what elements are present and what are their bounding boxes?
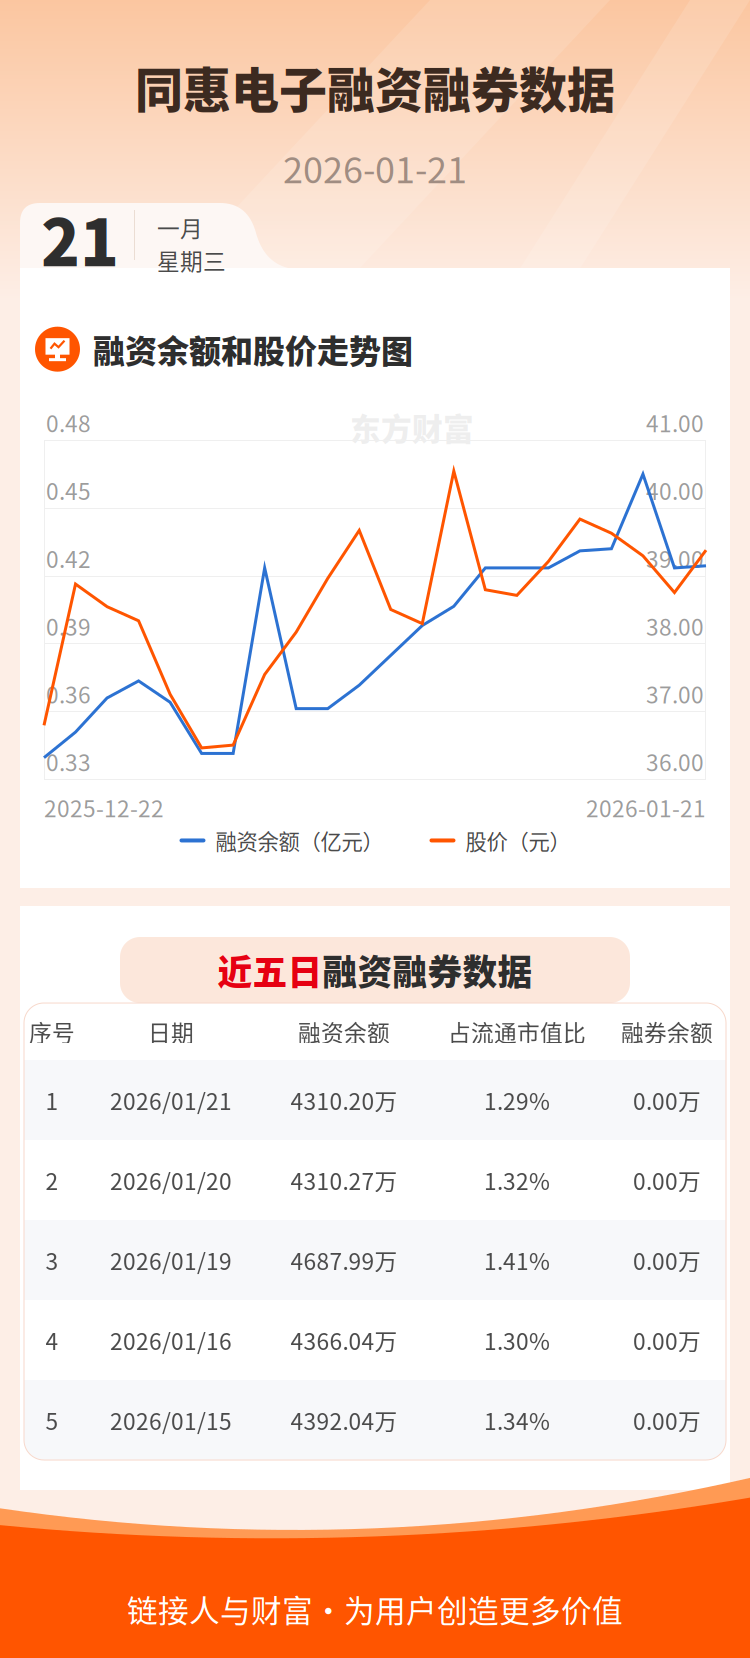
staticText: 4687.99万 (290, 1244, 397, 1276)
staticText: 融资余额（亿元） (215, 825, 383, 856)
staticText: 2026/01/21 (110, 1084, 232, 1116)
staticText: 21 (41, 192, 119, 285)
staticText: 1.29% (484, 1084, 550, 1116)
staticText: 2026/01/15 (110, 1404, 232, 1436)
staticText: 37.00 (646, 677, 704, 710)
staticText: 东方财富 (320, 1244, 444, 1288)
staticText: 4392.04万 (290, 1404, 397, 1436)
staticText: 1.32% (484, 1164, 550, 1196)
staticText: 0.00万 (633, 1244, 701, 1276)
staticText: 0.00万 (633, 1324, 701, 1356)
staticText: 39.00 (646, 542, 704, 574)
staticText: 0.33 (46, 745, 91, 778)
staticText: 4366.04万 (290, 1324, 397, 1356)
staticText: 38.00 (646, 609, 704, 642)
staticText: 36.00 (646, 745, 704, 778)
staticText: 0.00万 (633, 1164, 701, 1196)
staticText: 股价（元） (465, 825, 570, 856)
staticText: 41.00 (646, 406, 704, 439)
staticText: 2026/01/19 (110, 1244, 232, 1276)
staticText: 2026-01-21 (586, 791, 706, 824)
staticText: 链接人与财富·为用户创造更多价值 (127, 1587, 623, 1631)
staticText: 0.48 (46, 406, 91, 439)
staticText: 同惠电子融资融券数据 (135, 52, 615, 121)
staticText: 0.00万 (633, 1404, 701, 1436)
staticText: 0.42 (46, 542, 91, 574)
staticText: 占流通市值比 (448, 1015, 586, 1048)
staticText: 1.41% (484, 1244, 550, 1276)
staticText: 星期三 (157, 244, 226, 277)
staticText: 融资余额 (298, 1015, 390, 1048)
staticText: 融资余额和股价走势图 (93, 326, 413, 372)
staticText: 3 (45, 1244, 58, 1276)
staticText: 1.34% (484, 1404, 550, 1436)
staticText: 2026/01/20 (110, 1164, 232, 1196)
staticText: 序号 (29, 1015, 75, 1048)
staticText: 0.00万 (633, 1084, 701, 1116)
staticText: 4310.27万 (290, 1164, 397, 1196)
staticText: 2 (45, 1164, 58, 1196)
staticText: 2026/01/16 (110, 1324, 232, 1356)
staticText: 近五日 (217, 945, 322, 995)
staticText: 日期 (148, 1015, 194, 1048)
staticText: 2026-01-21 (283, 141, 467, 194)
staticText: 4310.20万 (290, 1084, 397, 1116)
staticText: 5 (45, 1404, 58, 1436)
staticText: 2025-12-22 (44, 791, 164, 824)
staticText: 1.30% (484, 1324, 550, 1356)
staticText: 0.36 (46, 677, 91, 710)
staticText: 融资融券数据 (322, 945, 532, 995)
staticText: 东方财富 (350, 405, 474, 449)
staticText: 1 (45, 1084, 58, 1116)
staticText: 0.45 (46, 474, 91, 507)
staticText: 0.39 (46, 609, 91, 642)
staticText: 4 (45, 1324, 58, 1356)
staticText: 一月 (157, 211, 203, 244)
staticText: 40.00 (646, 474, 704, 507)
staticText: 融券余额 (621, 1015, 713, 1048)
